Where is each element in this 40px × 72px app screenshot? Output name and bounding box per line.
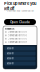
staticText: Conversation title [8, 37, 27, 40]
staticText: Session [6, 62, 13, 65]
staticText: Conversation title [8, 31, 27, 33]
staticText: Continue your conversation [6, 9, 33, 12]
staticText: Conversation title [8, 34, 27, 37]
staticText: Open Claude [10, 20, 30, 24]
staticText: Session [6, 47, 13, 50]
staticText: Session [6, 57, 13, 60]
button[interactable]: Open Claude [4, 19, 36, 25]
staticText: Recents [5, 27, 14, 30]
staticText: left off [4, 6, 15, 11]
staticText: Pick up where you [4, 1, 36, 6]
staticText: Session [6, 52, 13, 55]
staticText: Conversation title [8, 41, 27, 43]
